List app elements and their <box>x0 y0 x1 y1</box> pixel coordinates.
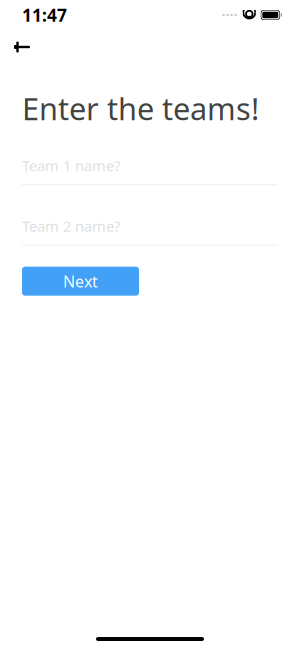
button[interactable]: Next <box>22 267 139 296</box>
staticText: Team 1 name? <box>22 156 120 175</box>
staticText: Next <box>63 271 98 292</box>
staticText: Team 2 name? <box>22 216 120 236</box>
staticText: 11:47 <box>22 3 67 26</box>
button[interactable]: Back <box>5 32 39 62</box>
staticText: Enter the teams! <box>22 88 259 129</box>
